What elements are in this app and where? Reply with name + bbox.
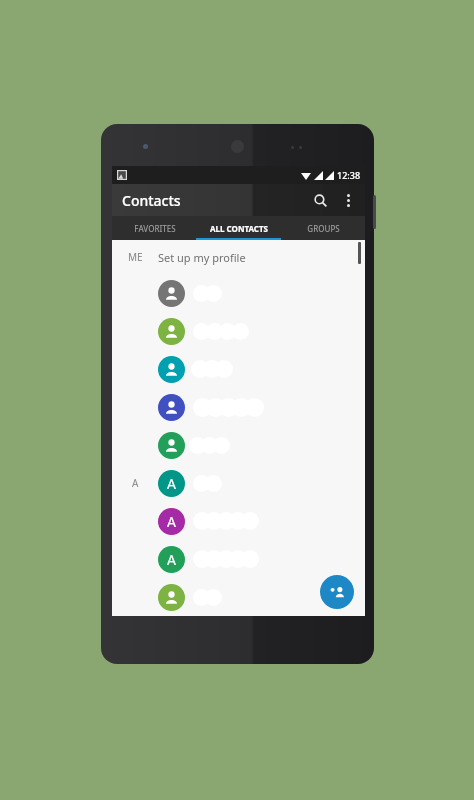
button[interactable] (112, 578, 365, 616)
button[interactable]: A (112, 502, 365, 540)
button[interactable]: More options (335, 187, 361, 213)
staticText: A (167, 550, 176, 569)
staticText: Set up my profile (158, 250, 246, 265)
button[interactable]: A (112, 540, 365, 578)
staticText: FAVORITES (134, 223, 176, 234)
staticText: ME (128, 250, 143, 264)
staticText: A (132, 476, 139, 490)
staticText: 12:38 (337, 169, 361, 181)
button[interactable]: Add contact (320, 575, 354, 609)
button[interactable] (112, 312, 365, 350)
button[interactable] (112, 426, 365, 464)
staticText: ALL CONTACTS (210, 223, 268, 234)
staticText: Contacts (122, 191, 181, 210)
button[interactable]: A (112, 464, 365, 502)
button[interactable] (112, 274, 365, 312)
staticText: A (167, 512, 176, 531)
staticText: A (167, 474, 176, 493)
button[interactable] (112, 350, 365, 388)
button[interactable]: ME (112, 240, 365, 274)
button[interactable] (112, 388, 365, 426)
button[interactable]: FAVORITES (112, 216, 197, 240)
staticText: GROUPS (307, 223, 340, 234)
button[interactable]: Search (305, 185, 335, 215)
button[interactable]: ALL CONTACTS (197, 216, 281, 240)
button[interactable]: GROUPS (281, 216, 365, 240)
